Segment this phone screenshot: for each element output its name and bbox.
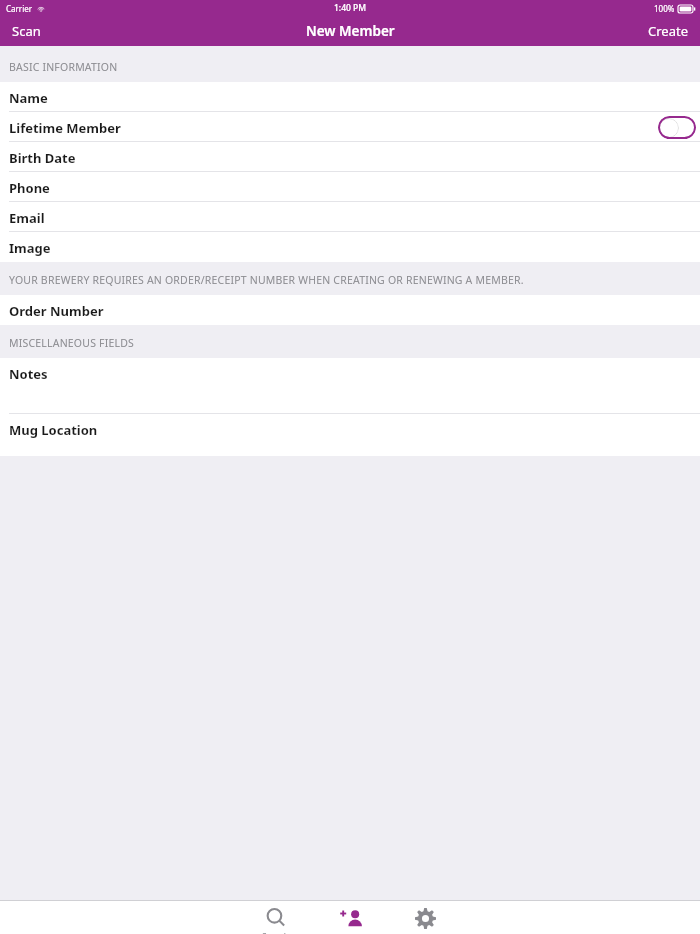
staticText: Scan [12,22,41,40]
button[interactable]: Image [0,232,700,262]
staticText: Lifetime Member [9,119,121,137]
button[interactable]: New Member [313,901,388,934]
button[interactable]: Notes [0,358,700,414]
button[interactable]: Create [636,16,700,46]
staticText: Image [9,239,51,257]
staticText: Phone [9,179,50,197]
staticText: 1:40 PM [334,2,367,14]
button[interactable]: Order Number [0,295,700,325]
staticText: Search [262,931,289,934]
other: Search [265,907,287,929]
staticText: Notes [9,365,48,383]
staticText: MISCELLANEOUS FIELDS [9,336,135,350]
staticText: New Member [306,22,395,40]
staticText: Create [648,22,688,40]
staticText: Mug Location [9,421,98,439]
button[interactable]: Birth Date [0,142,700,172]
other: New Member [338,907,364,933]
button[interactable]: Email [0,202,700,232]
button[interactable]: Admin [388,901,463,934]
button[interactable]: Phone [0,172,700,202]
staticText: YOUR BREWERY REQUIRES AN ORDER/RECEIPT N… [9,273,524,287]
staticText: Carrier [6,3,33,14]
button[interactable]: Lifetime Member [0,112,700,142]
staticText: Birth Date [9,149,76,167]
other: Admin [414,907,437,930]
staticText: Name [9,89,48,107]
button[interactable]: Scan [0,16,53,46]
button[interactable]: Name [0,82,700,112]
button[interactable]: Lifetime Member toggle [658,116,696,139]
staticText: 100% [654,3,675,14]
staticText: BASIC INFORMATION [9,60,118,74]
button[interactable]: Search [238,901,313,934]
staticText: Order Number [9,302,104,320]
button[interactable]: Mug Location [0,414,700,456]
staticText: Email [9,209,45,227]
